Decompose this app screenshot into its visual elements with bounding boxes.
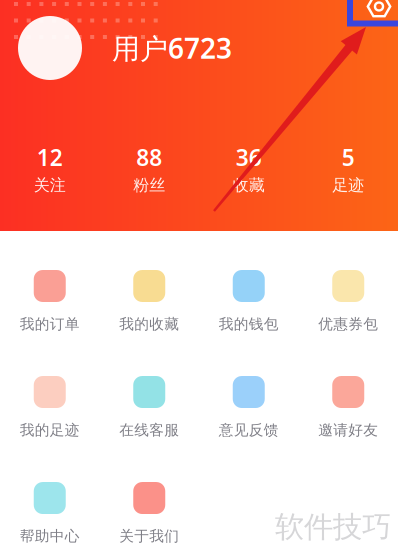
staticText: 邀请好友 — [318, 421, 378, 439]
staticText: 用户6723 — [112, 29, 232, 67]
button[interactable]: 12 — [0, 142, 99, 195]
staticText: 36 — [236, 142, 262, 172]
staticText: 帮助中心 — [20, 527, 80, 545]
button[interactable]: 关于我们 — [99, 482, 199, 545]
button[interactable]: 在线客服 — [99, 376, 199, 439]
staticText: 我的收藏 — [119, 315, 179, 333]
staticText: 足迹 — [332, 175, 364, 195]
button[interactable]: 帮助中心 — [0, 482, 99, 545]
staticText: 优惠券包 — [318, 315, 378, 333]
staticText: 我的订单 — [20, 315, 80, 333]
staticText: 5 — [342, 142, 355, 172]
button[interactable]: 优惠券包 — [298, 270, 398, 333]
button[interactable]: 设置 — [353, 0, 397, 30]
button[interactable]: 我的钱包 — [199, 270, 298, 333]
staticText: 我的钱包 — [219, 315, 279, 333]
button[interactable]: 我的收藏 — [99, 270, 199, 333]
button[interactable]: 5 — [298, 142, 398, 195]
staticText: 88 — [136, 142, 162, 172]
staticText: 软件技巧 — [275, 509, 391, 545]
button[interactable]: 意见反馈 — [199, 376, 298, 439]
staticText: 收藏 — [233, 175, 265, 195]
staticText: 关于我们 — [119, 527, 179, 545]
staticText: 我的足迹 — [20, 421, 80, 439]
staticText: 在线客服 — [119, 421, 179, 439]
staticText: 关注 — [34, 175, 66, 195]
staticText: 粉丝 — [133, 175, 165, 195]
button[interactable]: 36 — [199, 142, 298, 195]
staticText: 12 — [37, 142, 63, 172]
button[interactable]: 88 — [99, 142, 199, 195]
button[interactable]: 邀请好友 — [298, 376, 398, 439]
button[interactable]: 我的足迹 — [0, 376, 99, 439]
staticText: 意见反馈 — [219, 421, 279, 439]
button[interactable]: 我的订单 — [0, 270, 99, 333]
